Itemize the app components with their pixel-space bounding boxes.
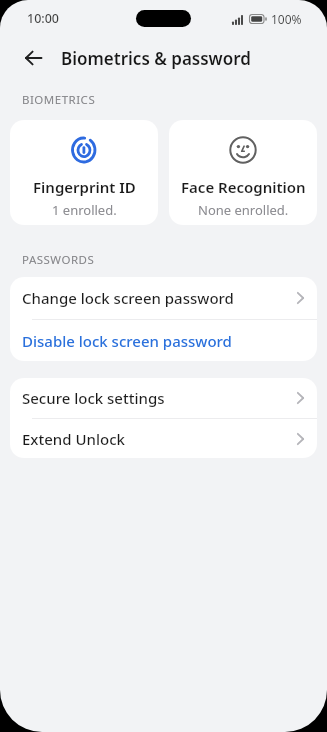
button[interactable]: Extend Unlock: [10, 419, 317, 458]
button[interactable]: Disable lock screen password: [10, 320, 317, 361]
button[interactable]: Secure lock settings: [10, 378, 317, 418]
staticText: 100%: [271, 11, 302, 27]
button[interactable]: Change lock screen password: [10, 277, 317, 319]
button[interactable]: Fingerprint ID: [10, 120, 158, 225]
staticText: PASSWORDS: [22, 252, 95, 268]
button[interactable]: Face Recognition: [169, 120, 317, 225]
staticText: 1 enrolled.: [52, 201, 117, 219]
staticText: Disable lock screen password: [22, 331, 232, 351]
staticText: Biometrics & password: [61, 47, 251, 70]
staticText: BIOMETRICS: [22, 92, 96, 108]
staticText: Fingerprint ID: [33, 177, 136, 197]
staticText: Extend Unlock: [22, 429, 297, 449]
staticText: Face Recognition: [181, 177, 306, 197]
staticText: None enrolled.: [198, 201, 289, 219]
button[interactable]: [16, 41, 50, 75]
staticText: 10:00: [27, 10, 60, 27]
staticText: Secure lock settings: [22, 388, 297, 408]
staticText: Change lock screen password: [22, 288, 297, 308]
